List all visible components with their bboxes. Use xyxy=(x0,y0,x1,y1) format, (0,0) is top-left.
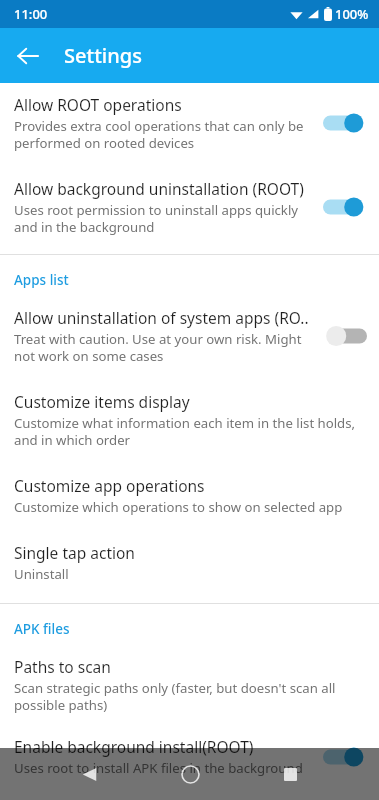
staticText: Scan strategic paths only (faster, but d… xyxy=(14,679,336,714)
staticText: Provides extra cool operations that can … xyxy=(14,117,304,152)
staticText: 100% xyxy=(335,5,369,23)
staticText: Customize items display xyxy=(14,391,190,412)
staticText: Customize app operations xyxy=(14,475,205,496)
button[interactable]: Paths to scan xyxy=(0,648,379,728)
staticText: Settings xyxy=(64,42,142,69)
staticText: Customize which operations to show on se… xyxy=(14,498,343,516)
button[interactable]: Allow background uninstallation (ROOT) xyxy=(0,168,379,254)
staticText: Uses root permission to uninstall apps q… xyxy=(14,201,299,236)
staticText: Customize what information each item in … xyxy=(14,414,356,449)
button[interactable]: Back xyxy=(6,34,50,78)
staticText: APK files xyxy=(14,620,70,638)
button[interactable]: Single tap action xyxy=(0,534,379,603)
staticText: Uses root to install APK files in the ba… xyxy=(14,759,303,777)
button[interactable]: Allow uninstallation of system apps (RO.… xyxy=(0,299,379,383)
button[interactable]: Back xyxy=(72,757,106,791)
staticText: Allow ROOT operations xyxy=(14,94,182,115)
button[interactable]: Home xyxy=(173,757,207,791)
button[interactable]: Recents xyxy=(273,757,307,791)
staticText: Treat with caution. Use at your own risk… xyxy=(14,330,302,365)
button[interactable]: Allow ROOT operations xyxy=(0,83,379,168)
staticText: Uninstall xyxy=(14,565,69,583)
button[interactable]: Enable background install(ROOT) xyxy=(0,728,379,791)
staticText: Allow uninstallation of system apps (RO.… xyxy=(14,307,309,328)
button[interactable]: Customize app operations xyxy=(0,467,379,534)
staticText: Allow background uninstallation (ROOT) xyxy=(14,178,304,199)
staticText: Enable background install(ROOT) xyxy=(14,736,254,757)
staticText: Single tap action xyxy=(14,542,135,563)
staticText: Paths to scan xyxy=(14,656,111,677)
staticText: 11:00 xyxy=(14,5,48,23)
button[interactable]: Customize items display xyxy=(0,383,379,467)
staticText: Apps list xyxy=(14,271,69,289)
